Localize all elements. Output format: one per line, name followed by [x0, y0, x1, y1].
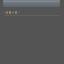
button[interactable]: Item 2 — [6, 11, 8, 14]
button[interactable]: Item 5 — [15, 11, 17, 14]
button[interactable]: Header panel — [3, 0, 60, 7]
button[interactable]: Item 3 — [9, 11, 11, 14]
button[interactable]: Item 4 — [12, 11, 14, 14]
